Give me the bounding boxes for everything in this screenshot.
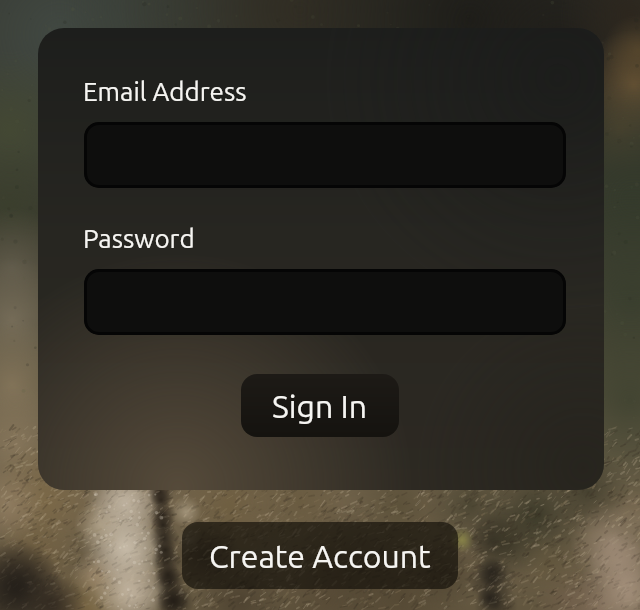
staticText: Email Address [83,77,247,106]
button[interactable]: Sign In [241,374,399,437]
staticText: Password [83,224,195,253]
button[interactable] [84,269,566,335]
staticText: Sign In [272,388,368,424]
button[interactable] [84,122,566,188]
button[interactable]: Create Account [182,522,458,589]
staticText: Create Account [209,538,431,574]
